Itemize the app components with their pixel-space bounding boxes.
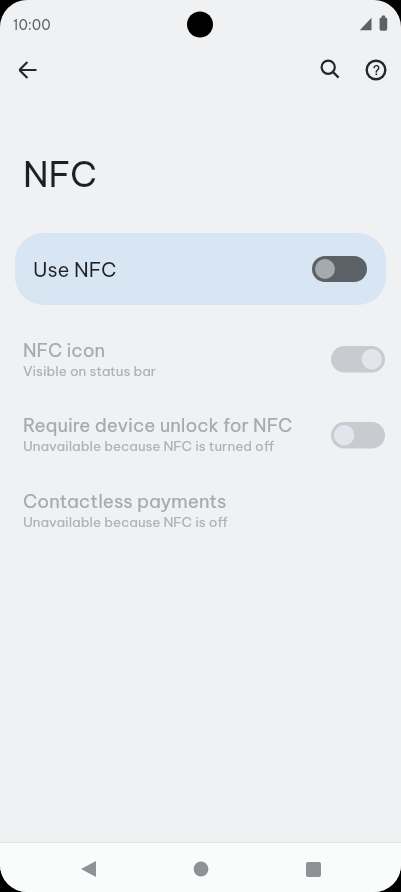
button[interactable]: Use NFC — [15, 233, 386, 305]
staticText: Visible on status bar — [23, 362, 157, 379]
staticText: Use NFC — [33, 257, 117, 282]
staticText: Require device unlock for NFC — [23, 413, 293, 436]
staticText: 10:00 — [13, 16, 51, 34]
staticText: Contactless payments — [23, 489, 227, 512]
button[interactable]: Contactless payments — [0, 482, 401, 544]
button[interactable] — [156, 844, 246, 892]
button[interactable]: Require device unlock for NFC — [0, 404, 401, 466]
button[interactable]: ? — [354, 48, 398, 92]
staticText: NFC — [23, 152, 98, 196]
button[interactable] — [309, 48, 353, 92]
button[interactable] — [44, 844, 134, 892]
button[interactable] — [6, 48, 50, 92]
button[interactable]: NFC icon — [0, 328, 401, 390]
staticText: NFC icon — [23, 338, 106, 361]
staticText: Unavailable because NFC is off — [23, 513, 228, 530]
button[interactable] — [268, 844, 358, 892]
staticText: Unavailable because NFC is turned off — [23, 437, 274, 454]
staticText: ? — [373, 63, 380, 78]
